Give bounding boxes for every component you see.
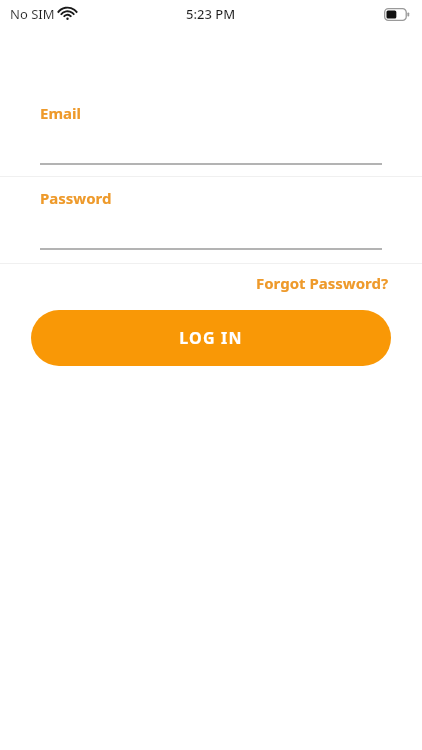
staticText: No SIM bbox=[10, 5, 55, 23]
staticText: Password bbox=[40, 188, 112, 208]
staticText: Email bbox=[40, 103, 81, 123]
button[interactable]: Password bbox=[0, 188, 422, 250]
button[interactable]: Email bbox=[0, 103, 422, 165]
button[interactable]: Forgot Password? bbox=[254, 269, 391, 297]
button[interactable]: LOG IN bbox=[31, 310, 391, 366]
staticText: 5:23 PM bbox=[186, 5, 236, 23]
staticText: Forgot Password? bbox=[256, 273, 389, 293]
staticText: LOG IN bbox=[179, 327, 243, 349]
